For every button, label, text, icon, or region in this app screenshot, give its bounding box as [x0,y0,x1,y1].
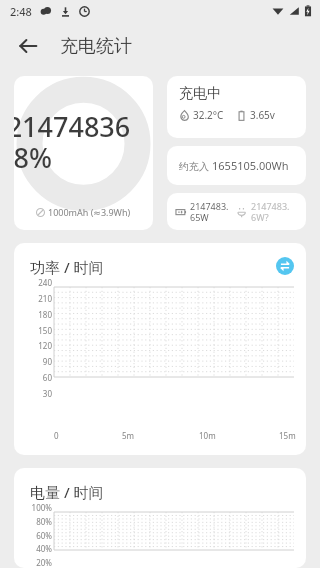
staticText: 32.2°C [193,108,224,122]
staticText: 15m [279,430,296,441]
staticText: 120 [20,340,52,351]
button[interactable]: 充电中 [167,76,306,138]
staticText: 充电统计 [60,35,132,58]
button[interactable]: 2147483.65W [167,193,306,230]
staticText: 210 [20,293,52,304]
staticText: 1000mAh (≈3.9Wh) [48,206,131,218]
staticText: 5m [122,430,135,441]
staticText: 40% [18,543,52,554]
staticText: 2147483.6W? [251,200,293,223]
button[interactable]: Back [8,26,48,66]
staticText: 150 [20,325,52,336]
staticText: 功率 / 时间 [30,257,104,277]
staticText: 20% [18,557,52,568]
staticText: 约充入 [179,159,212,173]
button[interactable]: 约充入 [167,146,306,185]
button[interactable]: 电量 / 时间 [14,468,306,568]
button[interactable]: 功率 / 时间 [14,243,306,455]
staticText: 100% [18,502,52,513]
staticText: 80% [18,516,52,527]
button[interactable]: -2147483648% [14,76,153,230]
staticText: 30 [20,388,52,399]
staticText: 充电中 [179,85,221,103]
staticText: 2:48 [10,4,32,19]
staticText: 0 [54,430,59,441]
button[interactable]: Swap axis [276,257,294,275]
staticText: 10m [199,430,216,441]
staticText: 60 [20,372,52,383]
staticText: 240 [20,277,52,288]
staticText: 电量 / 时间 [30,482,104,502]
staticText: 90 [20,356,52,367]
staticText: 1655105.00Wh [212,158,289,173]
staticText: 60% [18,530,52,541]
staticText: -2147483648% [14,108,137,176]
staticText: 2147483.65W [190,200,230,223]
staticText: 180 [20,309,52,320]
staticText: 3.65v [250,108,275,122]
